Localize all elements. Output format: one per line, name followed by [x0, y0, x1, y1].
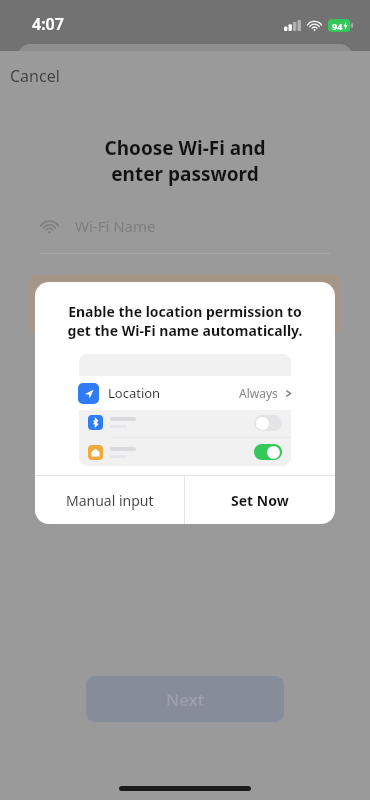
button[interactable]: Manual input [35, 476, 184, 524]
staticText: Always [239, 385, 278, 401]
staticText: Manual input [66, 491, 154, 510]
staticText: Choose Wi-Fi and enter password [0, 135, 370, 187]
staticText: Enable the location permission to get th… [49, 302, 321, 340]
staticText: Set Now [231, 491, 289, 510]
staticText: Wi-Fi Name [75, 216, 156, 236]
staticText: Cancel [10, 65, 60, 87]
button[interactable]: Wi-Fi Name [40, 211, 330, 241]
staticText: Location [108, 384, 161, 402]
button[interactable]: Set Now [185, 476, 335, 524]
button[interactable]: Cancel [0, 51, 370, 101]
button[interactable]: Location [78, 376, 292, 410]
staticText: Next [166, 688, 205, 711]
button[interactable]: Next [86, 676, 284, 722]
staticText: 94 [332, 20, 343, 32]
staticText: 4:07 [32, 13, 64, 35]
